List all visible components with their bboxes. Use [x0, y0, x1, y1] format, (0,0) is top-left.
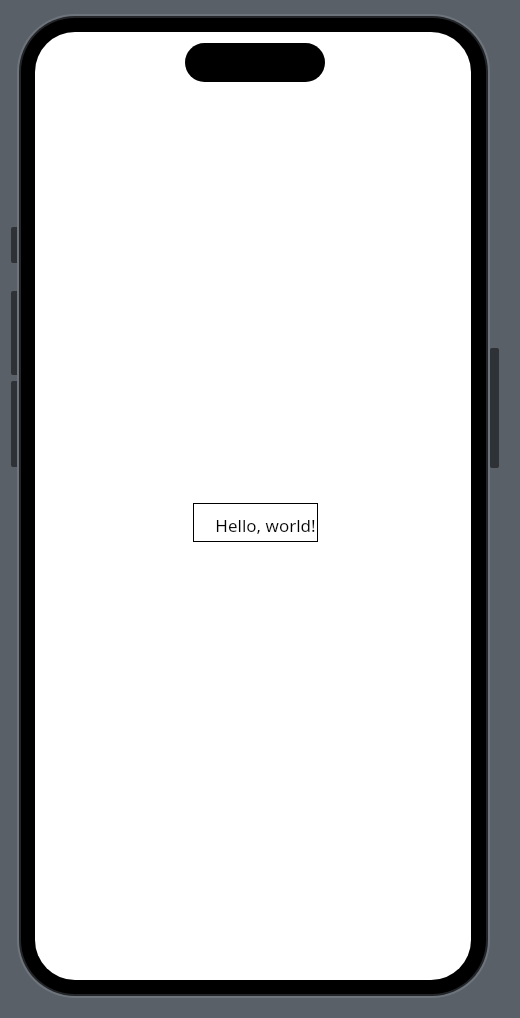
button[interactable]: Volume up — [11, 291, 20, 375]
staticText: Hello, world! — [215, 514, 316, 537]
button[interactable]: Hello, world! — [193, 503, 318, 542]
button[interactable]: Mute switch — [11, 227, 20, 263]
button[interactable]: Volume down — [11, 381, 20, 467]
